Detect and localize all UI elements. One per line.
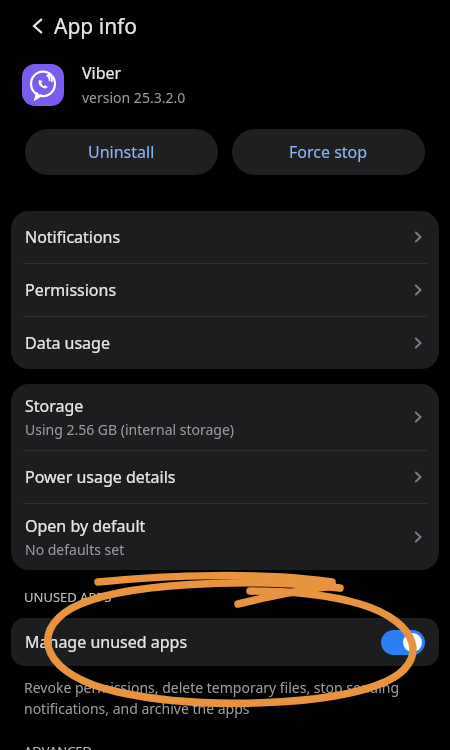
staticText: Open by default [25,515,146,537]
button[interactable]: Manage unused apps toggle [381,630,425,655]
staticText: UNUSED APPS [24,588,112,606]
staticText: notifications, and archive the apps [24,699,250,718]
staticText: Viber [82,62,122,84]
staticText: Uninstall [88,141,155,163]
staticText: Storage [25,395,84,417]
staticText: version 25.3.2.0 [82,88,186,107]
button[interactable]: Storage [11,384,439,450]
staticText: Force stop [289,141,368,163]
button[interactable]: Back [18,6,58,46]
staticText: Power usage details [25,466,176,488]
staticText: Notifications [25,226,121,248]
button[interactable]: Open by default [11,504,439,570]
staticText: Manage unused apps [25,631,381,653]
button[interactable]: Power usage details [11,451,439,503]
staticText: App info [54,12,138,41]
button[interactable]: Permissions [11,264,439,316]
button[interactable]: Uninstall [25,129,218,175]
staticText: Revoke permissions, delete temporary fil… [24,678,400,697]
staticText: Using 2.56 GB (internal storage) [25,420,235,439]
button[interactable]: Force stop [232,129,425,175]
staticText: Permissions [25,279,117,301]
staticText: Data usage [25,332,110,354]
staticText: ADVANCED [24,742,93,750]
button[interactable]: Data usage [11,317,439,369]
staticText: No defaults set [25,540,125,559]
button[interactable]: Manage unused apps [11,618,439,666]
button[interactable]: Notifications [11,211,439,263]
